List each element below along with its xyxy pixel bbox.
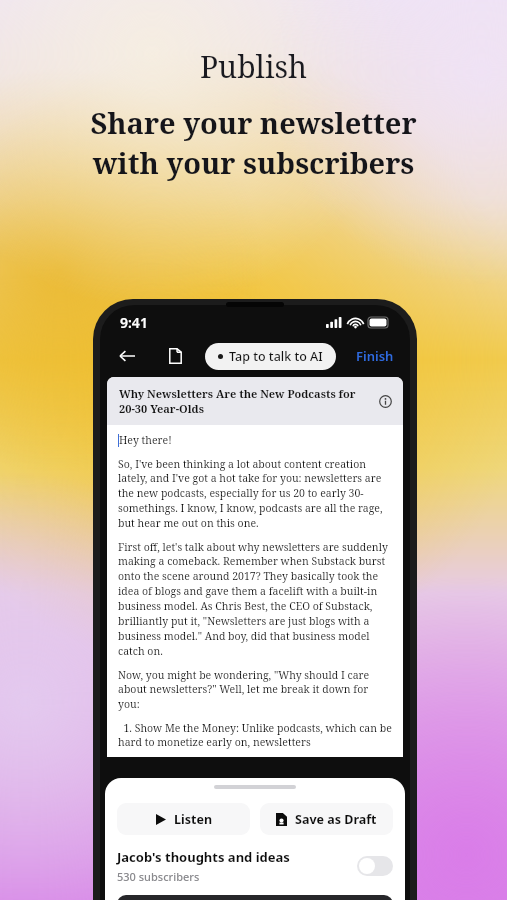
staticText: Share your newsletter with your subscrib… <box>90 103 417 183</box>
button[interactable]: Listen <box>117 803 250 835</box>
staticText: So, I've been thinking a lot about conte… <box>118 457 392 530</box>
button[interactable]: Document <box>162 343 188 369</box>
button[interactable]: Publish <box>117 895 393 900</box>
staticText: 530 subscribers <box>117 869 200 884</box>
staticText: Publish <box>200 46 308 87</box>
staticText: 1. Show Me the Money: Unlike podcasts, w… <box>118 721 392 749</box>
staticText: Jacob's thoughts and ideas <box>117 848 290 866</box>
button[interactable]: Toggle newsletter <box>357 856 393 876</box>
button[interactable]: Info <box>375 391 395 411</box>
staticText: Now, you might be wondering, "Why should… <box>118 668 392 711</box>
staticText: 9:41 <box>120 313 148 332</box>
button[interactable]: Back <box>114 343 140 369</box>
staticText: Listen <box>174 811 213 828</box>
staticText: Why Newsletters Are the New Podcasts for… <box>119 386 375 416</box>
staticText: Finish <box>356 347 394 365</box>
staticText: Save as Draft <box>295 811 377 828</box>
staticText: Hey there! <box>119 433 172 447</box>
button[interactable]: Save as Draft <box>260 803 393 835</box>
button[interactable]: Finish <box>354 347 396 365</box>
button[interactable]: Tap to talk to AI <box>205 343 336 370</box>
staticText: First off, let's talk about why newslett… <box>118 540 392 658</box>
staticText: Tap to talk to AI <box>229 348 323 365</box>
